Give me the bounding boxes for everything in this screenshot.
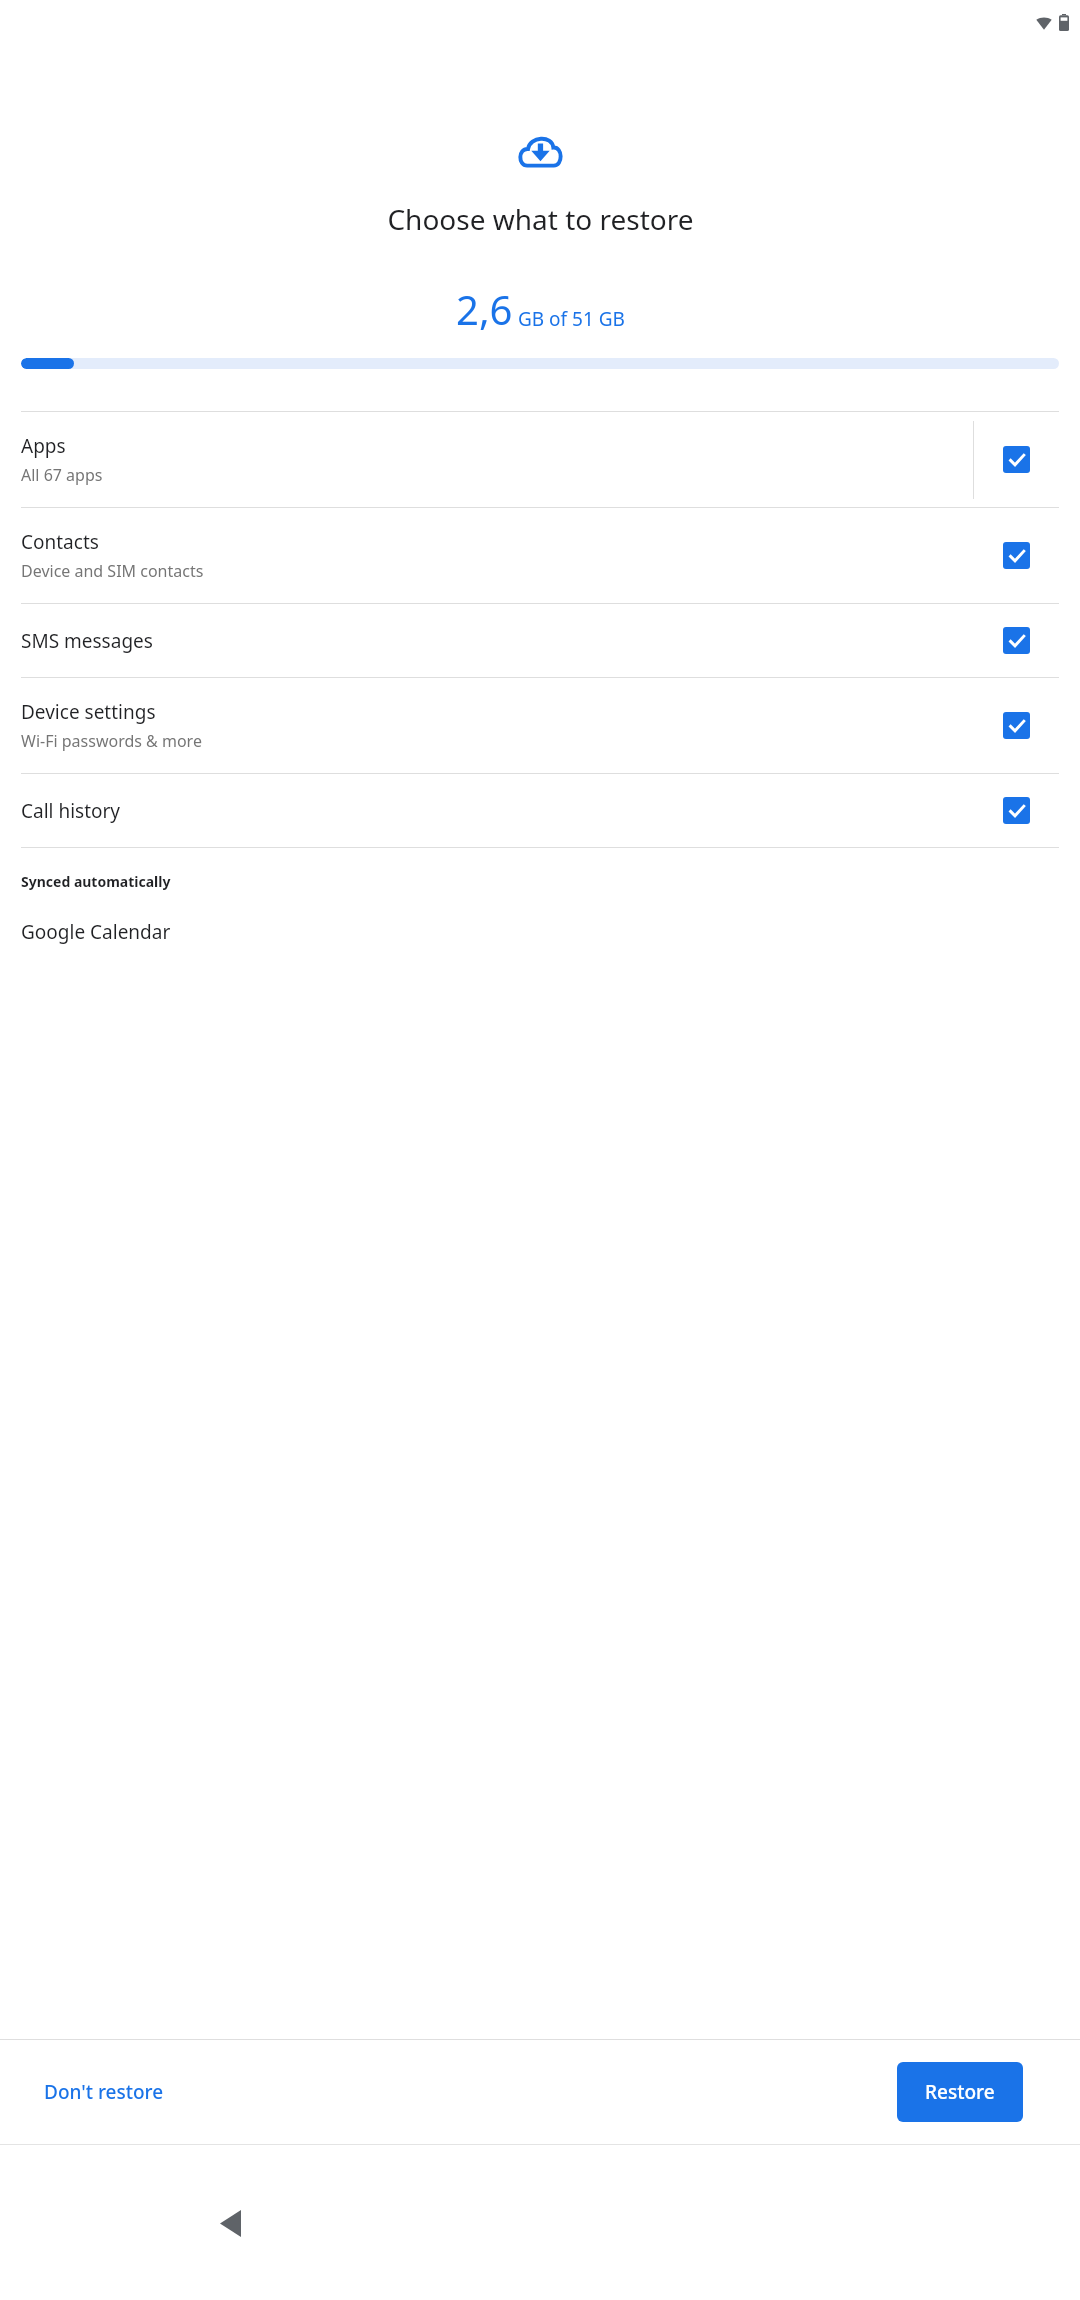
staticText: GB of 51 GB bbox=[518, 306, 625, 332]
staticText: Synced automatically bbox=[21, 872, 171, 891]
staticText: Call history bbox=[21, 798, 121, 824]
staticText: Device settings bbox=[21, 699, 156, 725]
staticText: SMS messages bbox=[21, 628, 153, 654]
button[interactable]: Don't restore bbox=[36, 2069, 172, 2115]
button[interactable]: Restore bbox=[897, 2062, 1023, 2122]
button[interactable]: Call history bbox=[21, 774, 1059, 847]
staticText: Wi-Fi passwords & more bbox=[21, 730, 202, 752]
button[interactable]: Apps bbox=[21, 412, 1059, 507]
button[interactable]: Device settings bbox=[21, 678, 1059, 773]
button[interactable]: Checked bbox=[1003, 712, 1030, 739]
staticText: 2,6 bbox=[456, 282, 513, 336]
button[interactable]: Checked bbox=[1003, 627, 1030, 654]
staticText: Restore bbox=[925, 2079, 995, 2105]
button[interactable]: Contacts bbox=[21, 508, 1059, 603]
button[interactable]: Back bbox=[180, 2173, 280, 2273]
staticText: Apps bbox=[21, 433, 66, 459]
button[interactable]: Checked bbox=[1003, 542, 1030, 569]
button[interactable]: Checked bbox=[1003, 446, 1030, 473]
staticText: Google Calendar bbox=[21, 919, 171, 945]
button[interactable]: Checked bbox=[1003, 797, 1030, 824]
staticText: All 67 apps bbox=[21, 464, 103, 486]
staticText: Contacts bbox=[21, 529, 99, 555]
staticText: Device and SIM contacts bbox=[21, 560, 204, 582]
button[interactable]: SMS messages bbox=[21, 604, 1059, 677]
staticText: Choose what to restore bbox=[387, 200, 694, 238]
staticText: Don't restore bbox=[44, 2079, 164, 2105]
